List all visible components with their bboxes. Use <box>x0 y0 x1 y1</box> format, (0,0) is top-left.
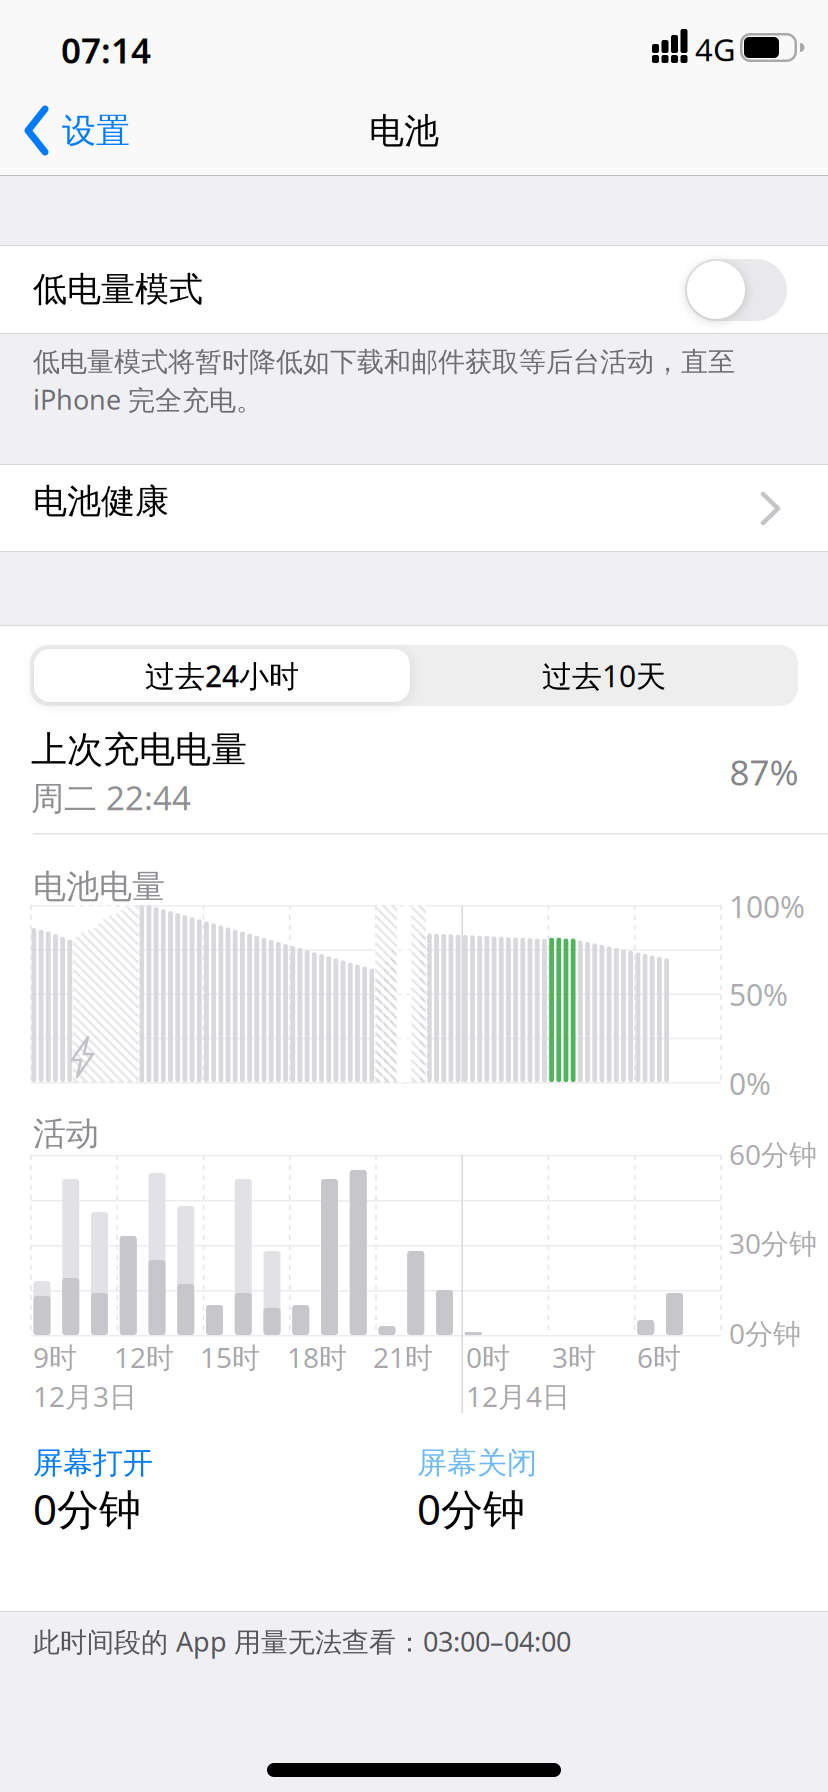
staticText: 12月3日 <box>33 1377 137 1415</box>
staticText: 设置 <box>62 110 130 152</box>
staticText: 屏幕打开 <box>33 1444 153 1482</box>
staticText: 15时 <box>200 1338 260 1376</box>
staticText: 周二 22:44 <box>31 775 191 820</box>
button[interactable]: 过去10天 <box>414 649 794 702</box>
staticText: 0时 <box>466 1338 510 1376</box>
staticText: 50% <box>729 974 788 1015</box>
staticText: 电池 <box>369 109 439 153</box>
staticText: 100% <box>729 886 805 927</box>
staticText: iPhone 完全充电。 <box>33 381 263 418</box>
button[interactable]: 低电量模式 <box>685 259 787 321</box>
staticText: 0% <box>729 1063 771 1104</box>
staticText: 12时 <box>114 1338 174 1376</box>
staticText: 屏幕关闭 <box>417 1444 537 1482</box>
staticText: 此时间段的 App 用量无法查看：03:00–04:00 <box>33 1623 571 1660</box>
button[interactable]: 电池健康 <box>0 465 828 551</box>
button[interactable]: 设置 <box>25 106 130 156</box>
staticText: 21时 <box>373 1338 433 1376</box>
staticText: 过去24小时 <box>145 655 299 696</box>
staticText: 低电量模式 <box>33 268 203 311</box>
staticText: 0分钟 <box>33 1480 141 1537</box>
button[interactable]: 屏幕打开 <box>33 1444 273 1544</box>
staticText: 0分钟 <box>729 1314 801 1352</box>
button[interactable]: 屏幕关闭 <box>417 1444 657 1544</box>
staticText: 过去10天 <box>542 655 666 696</box>
staticText: 60分钟 <box>729 1135 817 1173</box>
staticText: 电池电量 <box>33 866 165 908</box>
staticText: 9时 <box>33 1338 77 1376</box>
staticText: 3时 <box>552 1338 596 1376</box>
staticText: 30分钟 <box>729 1224 817 1262</box>
staticText: 电池健康 <box>33 480 169 523</box>
staticText: 87% <box>729 748 798 796</box>
staticText: 0分钟 <box>417 1480 525 1537</box>
staticText: 12月4日 <box>466 1377 570 1415</box>
staticText: 活动 <box>33 1113 99 1155</box>
button[interactable]: 过去24小时 <box>34 649 410 702</box>
staticText: 18时 <box>287 1338 347 1376</box>
staticText: 低电量模式将暂时降低如下载和邮件获取等后台活动，直至 <box>33 345 735 379</box>
staticText: 4G <box>695 28 736 70</box>
staticText: 07:14 <box>61 26 151 74</box>
staticText: 6时 <box>637 1338 681 1376</box>
staticText: 上次充电电量 <box>31 727 247 772</box>
